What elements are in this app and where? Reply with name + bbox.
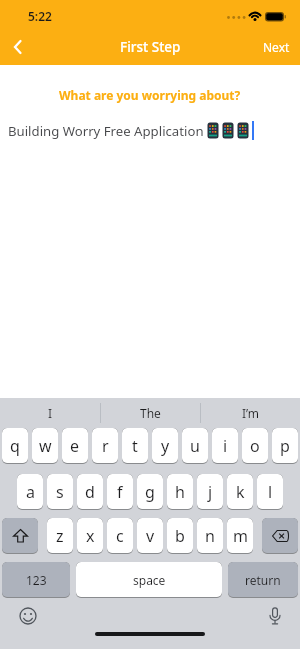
staticText: 123 bbox=[26, 572, 47, 588]
staticText: What are you worrying about? bbox=[59, 87, 241, 103]
button[interactable]: l bbox=[257, 474, 283, 510]
button[interactable]: y bbox=[152, 428, 178, 464]
staticText: I bbox=[48, 405, 53, 421]
staticText: o bbox=[250, 435, 260, 457]
staticText: k bbox=[236, 481, 245, 503]
staticText: g bbox=[145, 481, 155, 503]
button[interactable]: m bbox=[227, 518, 253, 554]
button[interactable]: q bbox=[2, 428, 28, 464]
staticText: y bbox=[161, 435, 170, 457]
button[interactable]: I’m bbox=[201, 398, 300, 428]
button[interactable]: Next bbox=[253, 31, 300, 63]
staticText: l bbox=[268, 481, 273, 503]
staticText: 5:22 bbox=[28, 8, 52, 24]
button[interactable]: z bbox=[47, 518, 73, 554]
staticText: e bbox=[70, 435, 80, 457]
button[interactable]: i bbox=[212, 428, 238, 464]
button[interactable]: o bbox=[242, 428, 268, 464]
button[interactable]: The bbox=[101, 398, 200, 428]
staticText: u bbox=[190, 435, 200, 457]
staticText: x bbox=[86, 525, 95, 547]
staticText: b bbox=[175, 525, 185, 547]
button[interactable] bbox=[268, 607, 282, 629]
staticText: I’m bbox=[242, 405, 260, 421]
staticText: Building Worry Free Application bbox=[8, 122, 204, 140]
staticText: First Step bbox=[120, 38, 181, 56]
staticText: r bbox=[102, 435, 109, 457]
staticText: Next bbox=[263, 39, 290, 55]
button[interactable]: space bbox=[76, 562, 222, 598]
staticText: s bbox=[56, 481, 64, 503]
button[interactable]: d bbox=[77, 474, 103, 510]
staticText: return bbox=[245, 572, 281, 588]
button[interactable]: g bbox=[137, 474, 163, 510]
staticText: q bbox=[10, 435, 20, 457]
staticText: m bbox=[233, 525, 248, 547]
staticText: w bbox=[39, 435, 52, 457]
staticText: j bbox=[208, 481, 213, 503]
button[interactable]: 123 bbox=[2, 562, 70, 598]
staticText: p bbox=[280, 435, 290, 457]
staticText: t bbox=[132, 435, 138, 457]
button[interactable]: s bbox=[47, 474, 73, 510]
button[interactable]: t bbox=[122, 428, 148, 464]
button[interactable]: w bbox=[32, 428, 58, 464]
button[interactable]: I bbox=[0, 398, 100, 428]
button[interactable]: x bbox=[77, 518, 103, 554]
staticText: d bbox=[85, 481, 95, 503]
button[interactable]: f bbox=[107, 474, 133, 510]
button[interactable]: return bbox=[228, 562, 298, 598]
button[interactable] bbox=[262, 518, 298, 554]
button[interactable]: c bbox=[107, 518, 133, 554]
button[interactable]: p bbox=[272, 428, 298, 464]
button[interactable]: n bbox=[197, 518, 223, 554]
button[interactable]: a bbox=[17, 474, 43, 510]
staticText: i bbox=[223, 435, 228, 457]
button[interactable] bbox=[2, 518, 38, 554]
staticText: a bbox=[26, 481, 35, 503]
staticText: z bbox=[56, 525, 64, 547]
staticText: space bbox=[133, 572, 166, 588]
staticText: h bbox=[175, 481, 185, 503]
staticText: f bbox=[117, 481, 123, 503]
button[interactable]: j bbox=[197, 474, 223, 510]
button[interactable]: k bbox=[227, 474, 253, 510]
button[interactable]: e bbox=[62, 428, 88, 464]
staticText: n bbox=[205, 525, 215, 547]
staticText: The bbox=[140, 405, 161, 421]
button[interactable]: u bbox=[182, 428, 208, 464]
button[interactable] bbox=[18, 608, 38, 628]
staticText: c bbox=[116, 525, 124, 547]
button[interactable]: v bbox=[137, 518, 163, 554]
button[interactable]: h bbox=[167, 474, 193, 510]
staticText: v bbox=[146, 525, 155, 547]
button[interactable]: r bbox=[92, 428, 118, 464]
button[interactable]: b bbox=[167, 518, 193, 554]
button[interactable] bbox=[0, 28, 36, 65]
